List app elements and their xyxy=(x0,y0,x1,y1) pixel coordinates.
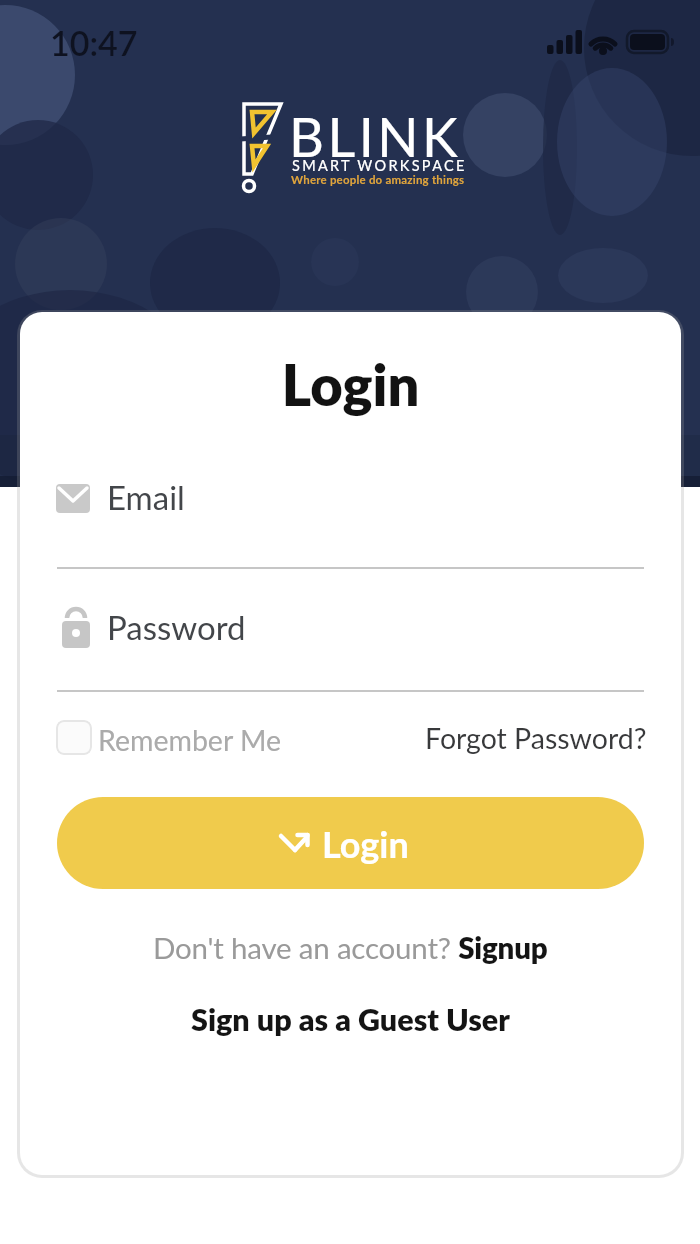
button[interactable]: Email xyxy=(40,462,660,532)
staticText: Login xyxy=(20,351,681,418)
staticText: Don't have an account? Signup xyxy=(153,930,548,965)
staticText: Password xyxy=(107,607,246,647)
button[interactable]: Remember Me xyxy=(40,710,320,766)
button[interactable]: Don't have an account? Signup xyxy=(20,922,681,972)
staticText: Login xyxy=(322,822,409,865)
button[interactable]: Forgot Password? xyxy=(400,710,660,766)
button[interactable]: Password xyxy=(40,587,660,657)
button[interactable]: Login xyxy=(57,797,644,889)
staticText: Email xyxy=(107,477,185,517)
button[interactable]: Sign up as a Guest User xyxy=(20,994,681,1044)
staticText: BLINK xyxy=(289,104,462,169)
staticText: SMART WORKSPACE xyxy=(292,157,467,174)
staticText: Remember Me xyxy=(98,723,282,757)
staticText: Where people do amazing things xyxy=(291,173,465,187)
staticText: Forgot Password? xyxy=(425,721,647,755)
staticText: Sign up as a Guest User xyxy=(191,1001,510,1038)
staticText: 10:47 xyxy=(50,22,138,63)
